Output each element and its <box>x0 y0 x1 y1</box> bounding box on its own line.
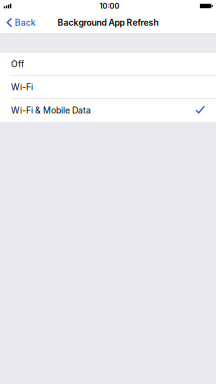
button[interactable]: Back <box>0 12 41 33</box>
button[interactable]: Wi-Fi <box>0 76 216 98</box>
staticText: Background App Refresh <box>57 17 158 28</box>
button[interactable]: Wi-Fi & Mobile Data <box>0 99 216 121</box>
staticText: Wi-Fi <box>11 82 33 92</box>
staticText: Back <box>15 17 36 28</box>
staticText: 10:00 <box>99 2 119 10</box>
staticText: Off <box>11 59 24 69</box>
button[interactable]: Off <box>0 53 216 75</box>
staticText: Wi-Fi & Mobile Data <box>11 105 91 115</box>
